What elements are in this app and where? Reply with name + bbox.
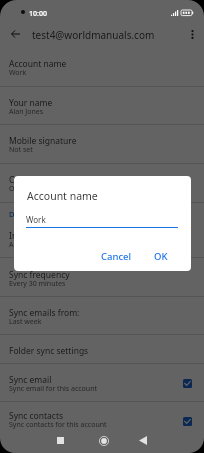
staticText: Automatic (Push)	[9, 240, 65, 250]
staticText: Inbox check frequency	[9, 230, 99, 242]
button[interactable]: Sync email	[0, 364, 204, 402]
staticText: Out of Office AutoReply	[9, 174, 103, 186]
button[interactable]: Back	[133, 431, 152, 450]
button[interactable]: Inbox check frequency	[0, 222, 204, 258]
button[interactable]: Account name	[0, 48, 204, 87]
staticText: OK	[154, 250, 168, 263]
button[interactable]: Your name	[0, 87, 204, 125]
button[interactable]: Sync contacts	[0, 402, 204, 440]
staticText: Last week	[9, 317, 42, 327]
button[interactable]: More options	[184, 26, 200, 42]
staticText: Sync frequency	[9, 269, 70, 281]
staticText: Off	[9, 184, 20, 194]
button[interactable]: Cancel	[96, 246, 137, 267]
button[interactable]: Navigate up	[7, 26, 23, 42]
staticText: Work	[26, 214, 46, 225]
button[interactable]: Folder sync settings	[0, 335, 204, 364]
staticText: test4@worldmanuals.com	[32, 28, 155, 42]
staticText: Your name	[9, 97, 53, 109]
staticText: Cancel	[101, 250, 132, 263]
button[interactable]: Recent apps	[51, 431, 70, 450]
button[interactable]: Sync emails from:	[0, 297, 204, 335]
button[interactable]: Sync frequency	[0, 258, 204, 297]
button[interactable]: Home	[94, 431, 113, 450]
staticText: Account name	[9, 58, 67, 70]
staticText: Not set	[9, 145, 33, 155]
staticText: Sync contacts	[9, 410, 64, 422]
button[interactable]: Out of Office AutoReply	[0, 164, 204, 203]
staticText: Mobile signature	[9, 135, 77, 147]
staticText: Sync emails from:	[9, 307, 80, 319]
staticText: Every 30 minutes	[9, 279, 66, 289]
staticText: Sync contacts for this account	[9, 420, 107, 430]
staticText: Account name	[27, 189, 98, 203]
staticText: Work	[9, 68, 27, 78]
staticText: Folder sync settings	[9, 345, 89, 357]
staticText: Sync email	[9, 374, 52, 386]
staticText: Sync email for this account	[9, 384, 98, 394]
button[interactable]: OK	[149, 246, 173, 267]
staticText: Alan Jones	[9, 107, 44, 117]
staticText: Data usage	[9, 209, 50, 219]
button[interactable]: Mobile signature	[0, 125, 204, 164]
staticText: 10:00	[29, 9, 47, 19]
